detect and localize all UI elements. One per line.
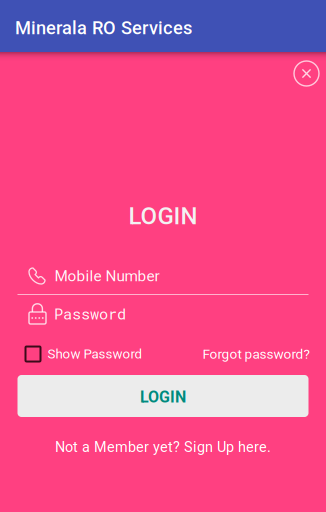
button[interactable]: Close [294,61,319,86]
staticText: Password [54,303,126,324]
button[interactable]: Forgot password? [202,346,309,362]
staticText: Show Password [47,346,142,362]
staticText: LOGIN [128,202,197,230]
staticText: Forgot password? [202,346,309,362]
button[interactable]: Show Password [25,346,142,362]
button[interactable]: LOGIN [17,375,308,417]
button[interactable]: Password [29,303,320,324]
button[interactable]: Mobile Number [27,266,318,286]
staticText: Not a Member yet? Sign Up here. [55,439,271,455]
staticText: LOGIN [140,388,186,406]
staticText: Minerala RO Services [15,17,192,39]
button[interactable]: Not a Member yet? Sign Up here. [0,438,326,456]
staticText: Mobile Number [54,267,159,285]
